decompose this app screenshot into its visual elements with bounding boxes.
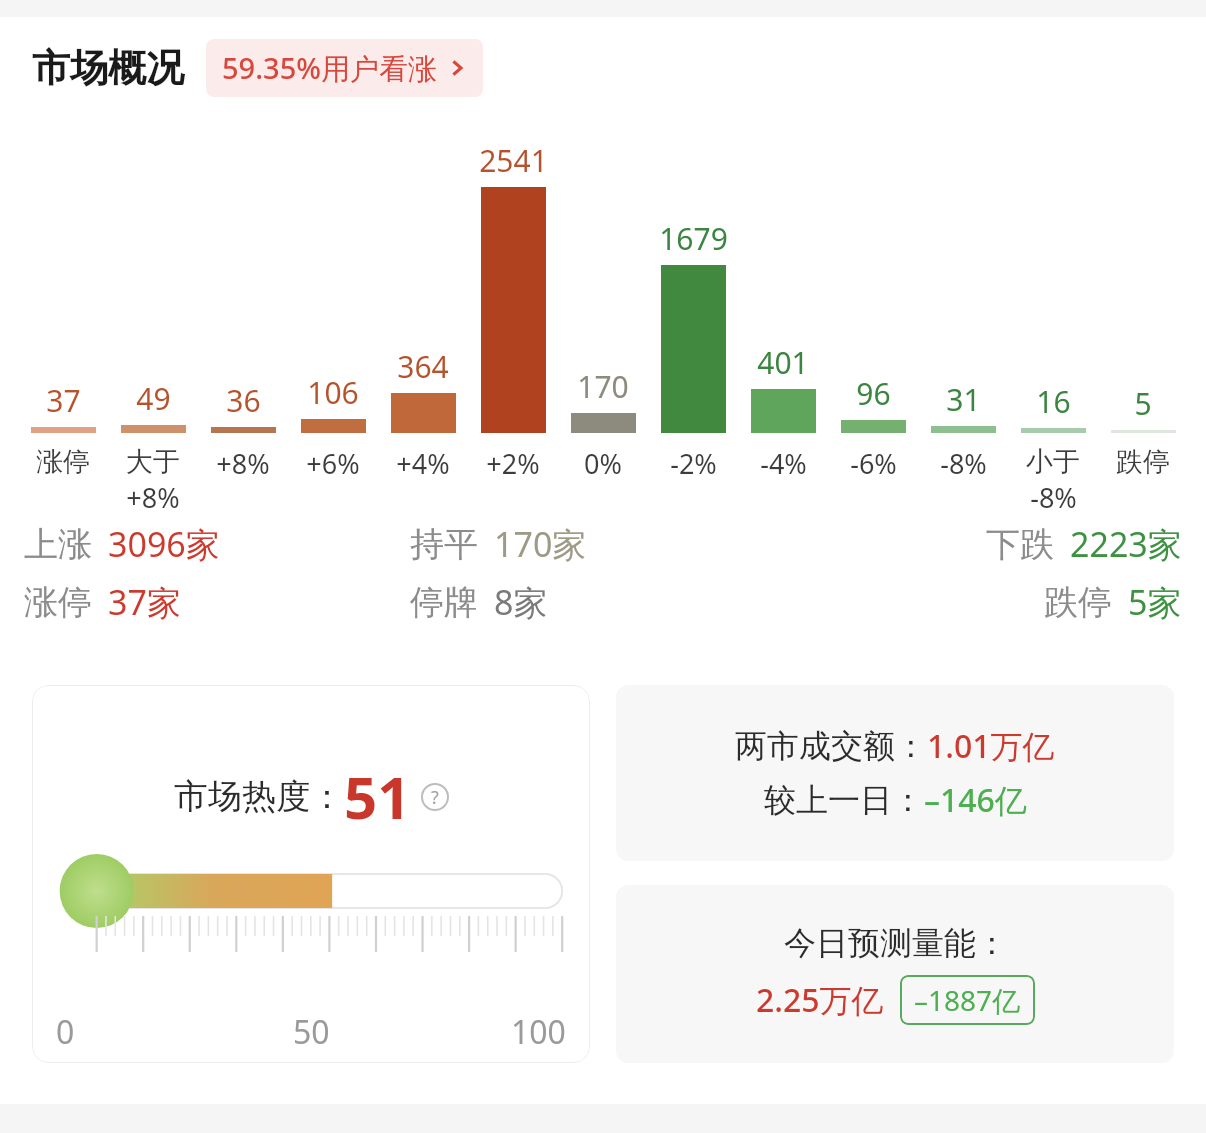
staticText: 16 [1036, 381, 1071, 422]
button[interactable]: Help [421, 783, 449, 811]
staticText: 1.01万亿 [927, 724, 1055, 768]
staticText: –1887亿 [914, 981, 1021, 1019]
staticText: 市场概况 [32, 44, 184, 92]
staticText: 下跌 [986, 523, 1054, 566]
staticText: 跌停 [1044, 581, 1112, 624]
staticText: 8家 [494, 579, 548, 625]
staticText: 涨停 [24, 581, 92, 624]
staticText: 2223家 [1070, 521, 1182, 567]
staticText: 5 [1134, 383, 1152, 424]
staticText: 停牌 [410, 581, 478, 624]
staticText: -6% [850, 445, 897, 482]
staticText: 小于 [1026, 445, 1080, 479]
button[interactable]: 59.35%用户看涨 [206, 39, 483, 97]
staticText: 49 [136, 378, 171, 419]
staticText: +4% [396, 445, 450, 482]
button[interactable]: 市场热度： [32, 685, 590, 1063]
staticText: +6% [306, 445, 360, 482]
staticText: 96 [856, 373, 891, 414]
staticText: 5家 [1128, 579, 1182, 625]
staticText: +8% [216, 445, 270, 482]
staticText: 37家 [108, 579, 181, 625]
staticText: 51 [344, 757, 411, 836]
staticText: 2.25万亿 [756, 978, 884, 1022]
staticText: 跌停 [1116, 445, 1170, 479]
staticText: 今日预测量能： [784, 923, 1008, 963]
staticText: 0 [56, 1010, 75, 1054]
staticText: 37 [46, 380, 81, 421]
button[interactable]: 两市成交额： [616, 685, 1174, 861]
staticText: +8% [126, 479, 180, 516]
staticText: 170家 [494, 521, 587, 567]
staticText: 市场热度： [174, 775, 344, 818]
staticText: 3096家 [108, 521, 220, 567]
staticText: +2% [486, 445, 540, 482]
staticText: 较上一日： [764, 780, 924, 820]
staticText: 100 [511, 1010, 566, 1054]
staticText: 涨停 [36, 445, 90, 479]
staticText: 上涨 [24, 523, 92, 566]
staticText: 1679 [659, 218, 728, 259]
staticText: 364 [397, 346, 449, 387]
staticText: -4% [760, 445, 807, 482]
staticText: 31 [946, 379, 981, 420]
staticText: ? [431, 785, 439, 810]
staticText: -8% [940, 445, 987, 482]
staticText: -8% [1030, 479, 1077, 516]
staticText: 59.35%用户看涨 [222, 48, 437, 88]
staticText: –146亿 [924, 778, 1027, 822]
staticText: 两市成交额： [735, 726, 927, 766]
staticText: 106 [307, 372, 359, 413]
staticText: 50 [293, 1010, 330, 1054]
staticText: 0% [584, 445, 622, 482]
button[interactable]: 今日预测量能： [616, 885, 1174, 1063]
staticText: -2% [670, 445, 717, 482]
staticText: 36 [226, 380, 261, 421]
staticText: 170 [577, 366, 629, 407]
staticText: 2541 [479, 140, 548, 181]
staticText: 401 [757, 342, 809, 383]
staticText: 大于 [126, 445, 180, 479]
staticText: 持平 [410, 523, 478, 566]
